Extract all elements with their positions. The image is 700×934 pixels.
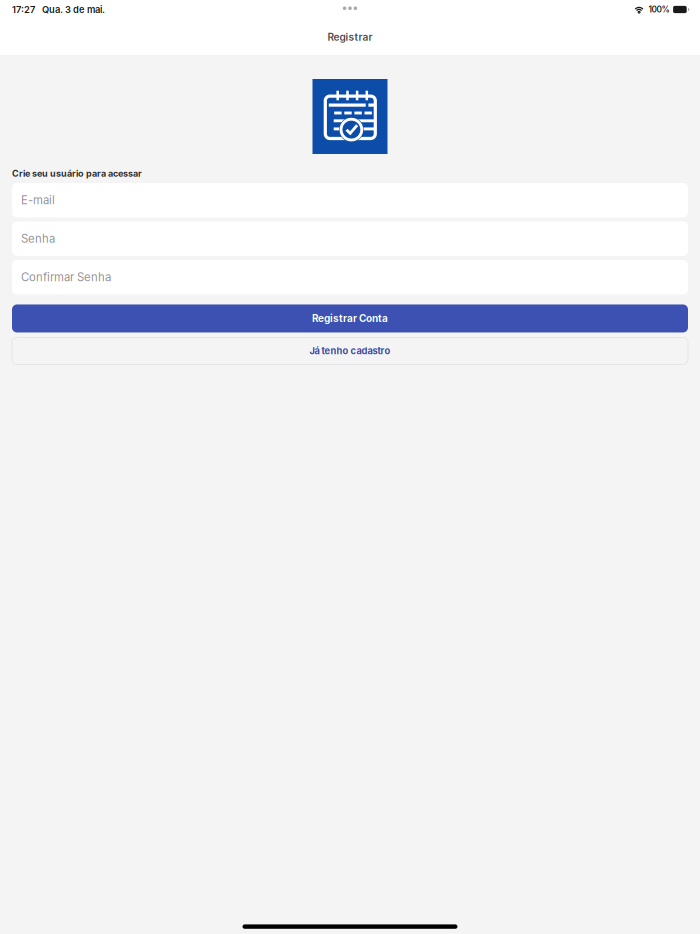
staticText: 17:27 bbox=[12, 4, 35, 15]
staticText: E-mail bbox=[21, 193, 55, 207]
button[interactable]: Registrar Conta bbox=[12, 304, 688, 332]
staticText: Crie seu usuário para acessar bbox=[12, 168, 142, 179]
staticText: Registrar bbox=[327, 31, 372, 43]
staticText: Registrar Conta bbox=[312, 312, 388, 324]
button[interactable]: Senha bbox=[12, 221, 688, 256]
staticText: 100% bbox=[649, 4, 670, 14]
button[interactable]: Confirmar Senha bbox=[12, 260, 688, 294]
button[interactable]: E-mail bbox=[12, 183, 688, 217]
staticText: Já tenho cadastro bbox=[309, 345, 390, 357]
staticText: Qua. 3 de mai. bbox=[42, 4, 105, 15]
staticText: Senha bbox=[21, 232, 55, 246]
button[interactable]: Já tenho cadastro bbox=[12, 337, 688, 364]
staticText: Confirmar Senha bbox=[21, 270, 111, 284]
